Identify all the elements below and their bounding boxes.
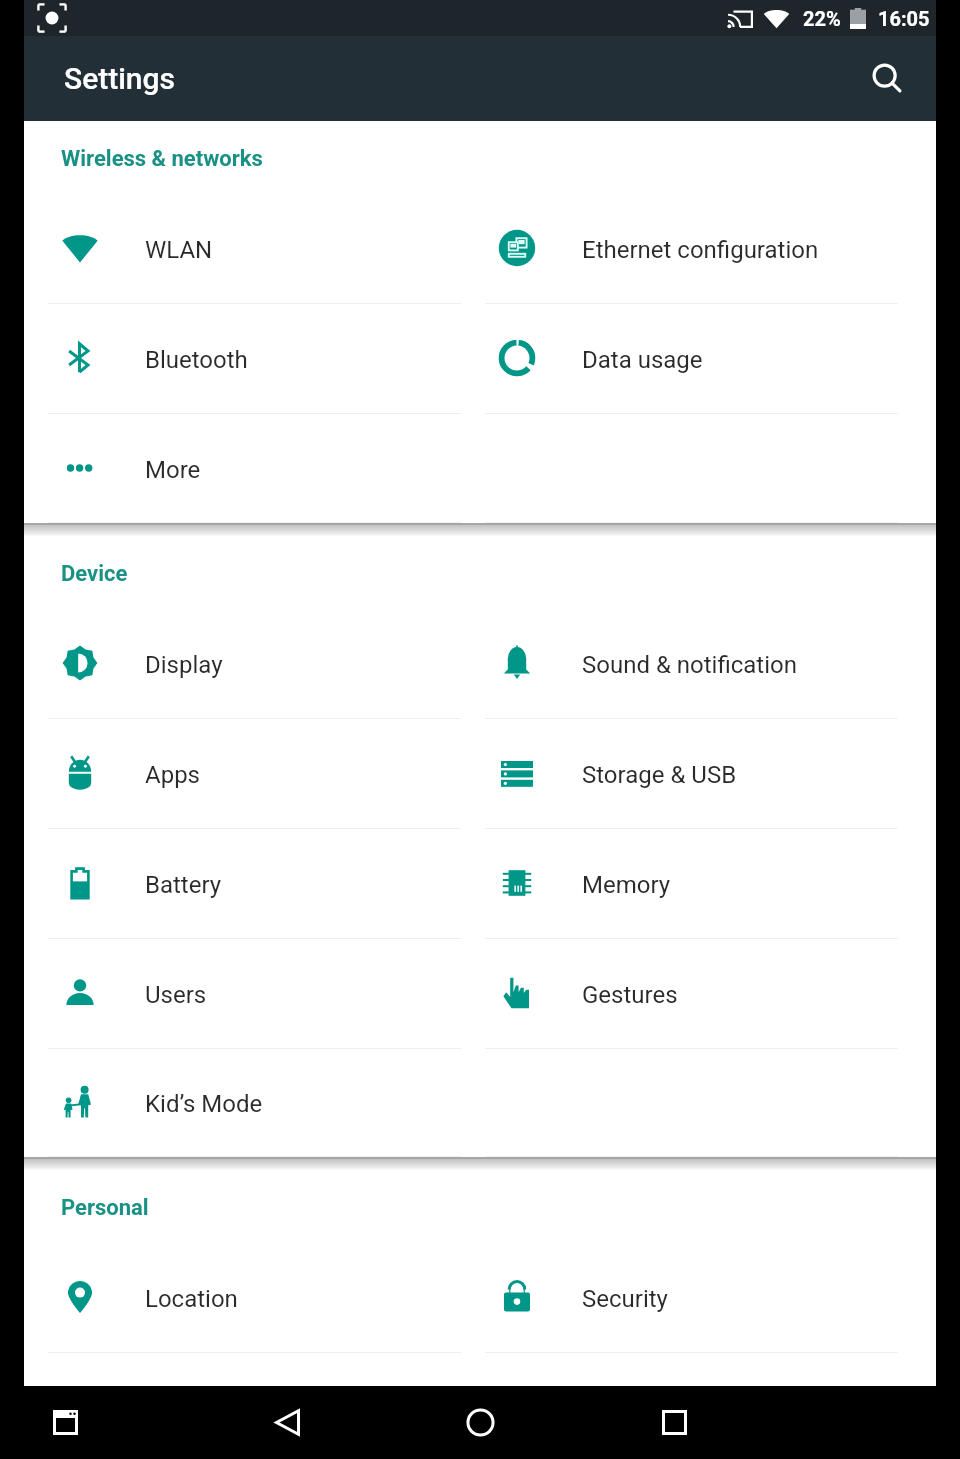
staticText: Memory — [582, 871, 671, 899]
button[interactable]: Home — [444, 1386, 516, 1458]
button[interactable]: Sound & notification — [461, 609, 898, 719]
staticText: Security — [582, 1285, 668, 1313]
button[interactable]: Users — [24, 939, 461, 1049]
staticText: Wireless & networks — [61, 146, 263, 172]
button[interactable]: Location — [24, 1243, 461, 1353]
button[interactable]: Bluetooth — [24, 304, 461, 414]
staticText: 22% — [803, 7, 841, 30]
staticText: Storage & USB — [582, 761, 737, 789]
staticText: Users — [145, 981, 207, 1009]
button[interactable]: Recent apps — [29, 1386, 101, 1458]
staticText: Apps — [145, 761, 200, 789]
staticText: Bluetooth — [145, 346, 248, 374]
button[interactable]: Security — [461, 1243, 898, 1353]
staticText: WLAN — [145, 236, 213, 264]
button[interactable]: Gestures — [461, 939, 898, 1049]
button[interactable]: Back — [251, 1386, 323, 1458]
staticText: Settings — [64, 61, 176, 96]
staticText: Display — [145, 651, 223, 679]
button[interactable]: Kid’s Mode — [24, 1049, 461, 1157]
staticText: Sound & notification — [582, 651, 797, 679]
button[interactable]: Apps — [24, 719, 461, 829]
button[interactable]: Data usage — [461, 304, 898, 414]
staticText: Device — [61, 561, 128, 587]
staticText: Personal — [61, 1195, 149, 1221]
button[interactable]: More — [24, 414, 461, 523]
button[interactable]: Battery — [24, 829, 461, 939]
staticText: Location — [145, 1285, 238, 1313]
staticText: More — [145, 456, 201, 484]
staticText: Ethernet configuration — [582, 236, 819, 264]
staticText: Gestures — [582, 981, 678, 1009]
button[interactable]: Display — [24, 609, 461, 719]
staticText: Data usage — [582, 346, 703, 374]
button[interactable]: WLAN — [24, 194, 461, 304]
staticText: 16:05 — [878, 7, 930, 30]
button[interactable]: Overview — [638, 1386, 710, 1458]
button[interactable]: Storage & USB — [461, 719, 898, 829]
button[interactable]: Memory — [461, 829, 898, 939]
button[interactable]: Search — [857, 49, 917, 109]
button[interactable]: Ethernet configuration — [461, 194, 898, 304]
staticText: Kid’s Mode — [145, 1090, 263, 1118]
staticText: Battery — [145, 871, 222, 899]
